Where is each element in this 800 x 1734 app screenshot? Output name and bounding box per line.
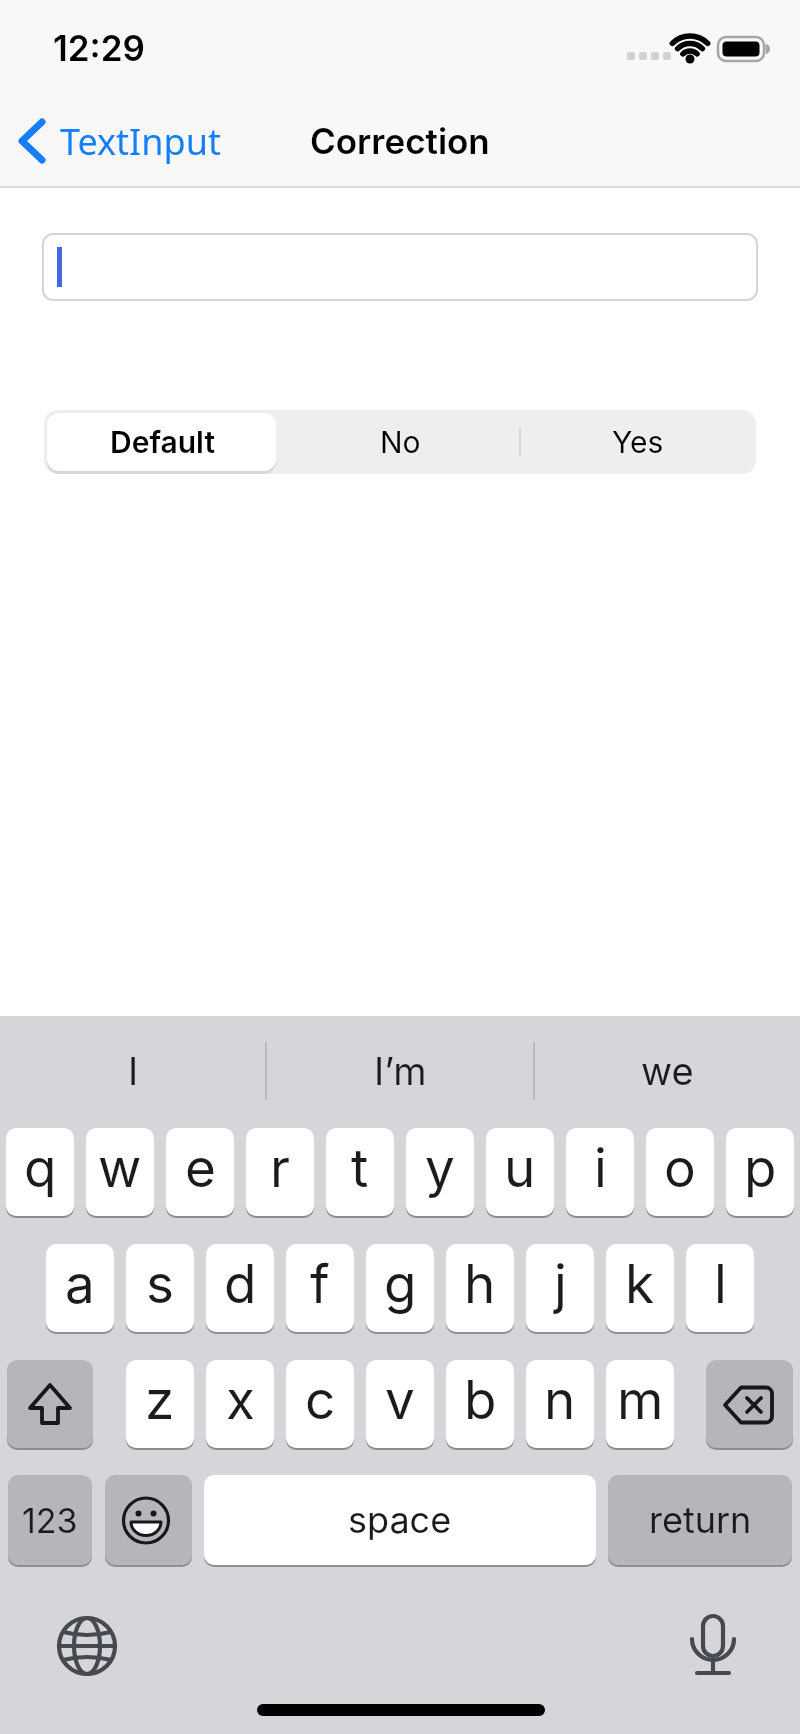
staticText: we bbox=[641, 1048, 694, 1094]
staticText: d bbox=[224, 1252, 257, 1316]
button[interactable] bbox=[42, 233, 758, 301]
button[interactable]: Default bbox=[44, 410, 281, 474]
button[interactable]: TextInput bbox=[14, 112, 221, 170]
staticText: No bbox=[380, 424, 421, 460]
button[interactable]: c bbox=[286, 1360, 354, 1448]
button[interactable]: i bbox=[566, 1128, 634, 1216]
button[interactable] bbox=[58, 1616, 118, 1678]
button[interactable]: I’m bbox=[267, 1016, 533, 1126]
button[interactable]: No bbox=[281, 410, 519, 474]
staticText: i bbox=[594, 1136, 607, 1200]
staticText: Default bbox=[110, 424, 215, 460]
button[interactable]: I bbox=[0, 1016, 266, 1126]
staticText: m bbox=[617, 1368, 664, 1432]
button[interactable]: y bbox=[406, 1128, 474, 1216]
staticText: z bbox=[145, 1368, 175, 1432]
staticText: 12:29 bbox=[53, 27, 145, 69]
button[interactable]: r bbox=[246, 1128, 314, 1216]
button[interactable]: z bbox=[126, 1360, 194, 1448]
button[interactable]: v bbox=[366, 1360, 434, 1448]
button[interactable]: j bbox=[526, 1244, 594, 1332]
button[interactable]: we bbox=[534, 1016, 800, 1126]
staticText: h bbox=[464, 1252, 496, 1316]
staticText: s bbox=[146, 1252, 174, 1316]
staticText: Yes bbox=[612, 424, 664, 460]
button[interactable]: x bbox=[206, 1360, 274, 1448]
staticText: y bbox=[425, 1136, 455, 1200]
button[interactable]: u bbox=[486, 1128, 554, 1216]
staticText: 123 bbox=[22, 1500, 78, 1541]
button[interactable]: space bbox=[204, 1475, 596, 1565]
button[interactable]: s bbox=[126, 1244, 194, 1332]
staticText: g bbox=[384, 1252, 417, 1316]
button[interactable] bbox=[686, 1610, 740, 1680]
staticText: b bbox=[464, 1368, 497, 1432]
button[interactable]: d bbox=[206, 1244, 274, 1332]
staticText: w bbox=[98, 1136, 142, 1200]
button[interactable]: f bbox=[286, 1244, 354, 1332]
staticText: l bbox=[714, 1252, 727, 1316]
button[interactable]: Yes bbox=[519, 410, 756, 474]
button[interactable]: o bbox=[646, 1128, 714, 1216]
staticText: j bbox=[554, 1252, 567, 1316]
button[interactable]: h bbox=[446, 1244, 514, 1332]
staticText: space bbox=[348, 1498, 452, 1542]
button[interactable]: w bbox=[86, 1128, 154, 1216]
staticText: p bbox=[744, 1136, 777, 1200]
button[interactable]: 123 bbox=[8, 1475, 92, 1565]
staticText: a bbox=[65, 1252, 95, 1316]
staticText: n bbox=[544, 1368, 576, 1432]
button[interactable] bbox=[706, 1360, 793, 1448]
staticText: o bbox=[664, 1136, 696, 1200]
button[interactable]: m bbox=[606, 1360, 674, 1448]
staticText: c bbox=[305, 1368, 336, 1432]
staticText: v bbox=[385, 1368, 415, 1432]
staticText: r bbox=[270, 1136, 290, 1200]
button[interactable]: q bbox=[6, 1128, 74, 1216]
staticText: q bbox=[24, 1136, 57, 1200]
button[interactable]: n bbox=[526, 1360, 594, 1448]
button[interactable]: return bbox=[608, 1475, 792, 1565]
button[interactable]: k bbox=[606, 1244, 674, 1332]
staticText: I bbox=[128, 1048, 139, 1094]
staticText: return bbox=[649, 1498, 752, 1542]
button[interactable]: g bbox=[366, 1244, 434, 1332]
staticText: e bbox=[185, 1136, 216, 1200]
staticText: k bbox=[625, 1252, 655, 1316]
button[interactable]: t bbox=[326, 1128, 394, 1216]
staticText: I’m bbox=[374, 1048, 427, 1094]
staticText: x bbox=[226, 1368, 255, 1432]
button[interactable]: a bbox=[46, 1244, 114, 1332]
button[interactable]: b bbox=[446, 1360, 514, 1448]
staticText: t bbox=[351, 1136, 369, 1200]
staticText: u bbox=[504, 1136, 536, 1200]
staticText: f bbox=[310, 1252, 330, 1316]
staticText: TextInput bbox=[60, 117, 221, 166]
button[interactable] bbox=[105, 1475, 192, 1565]
button[interactable]: p bbox=[726, 1128, 794, 1216]
button[interactable] bbox=[7, 1360, 93, 1448]
button[interactable]: e bbox=[166, 1128, 234, 1216]
button[interactable]: l bbox=[686, 1244, 754, 1332]
staticText: Correction bbox=[310, 120, 490, 162]
